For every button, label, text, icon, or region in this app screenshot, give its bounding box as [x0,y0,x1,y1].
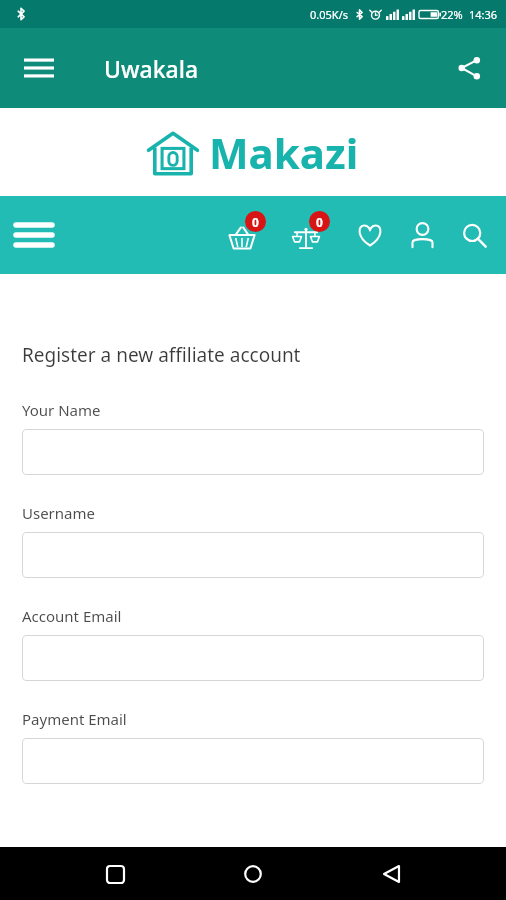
button[interactable]: Recent apps [92,851,138,897]
button[interactable]: Account Email [22,635,484,681]
staticText: Register a new affiliate account [22,342,301,368]
button[interactable]: Back [368,851,414,897]
button[interactable]: Compare [280,209,332,261]
button[interactable]: Cart [216,209,268,261]
button[interactable]: Account [398,211,446,259]
button[interactable]: Your Name [22,429,484,475]
staticText: 14:36 [469,7,498,22]
staticText: Payment Email [22,709,127,729]
staticText: Makazi [209,124,359,181]
staticText: 0.05K/s [310,7,348,22]
button[interactable]: Wishlist [346,211,394,259]
staticText: Account Email [22,606,122,626]
staticText: Uwakala [104,53,199,84]
button[interactable]: Search [450,211,498,259]
staticText: 0 [316,214,323,230]
staticText: 22% [441,7,463,22]
button[interactable]: Categories menu [6,207,62,263]
staticText: 0 [252,214,259,230]
button[interactable]: Share [442,41,496,95]
button[interactable]: Username [22,532,484,578]
button[interactable]: Home [230,851,276,897]
staticText: Username [22,503,95,523]
button[interactable]: Open navigation menu [10,39,68,97]
button[interactable]: Payment Email [22,738,484,784]
staticText: Your Name [22,400,101,420]
